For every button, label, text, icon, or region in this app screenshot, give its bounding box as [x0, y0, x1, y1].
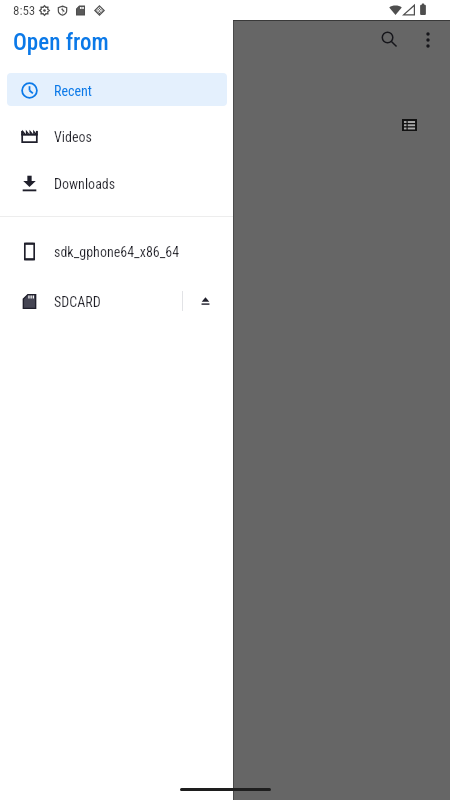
staticText: Open from: [13, 29, 109, 56]
button[interactable]: Videos: [0, 119, 233, 153]
button[interactable]: More options: [408, 20, 448, 60]
staticText: 8:53: [13, 3, 36, 18]
button[interactable]: Eject: [183, 284, 233, 318]
button[interactable]: Search: [369, 19, 409, 59]
staticText: SDCARD: [54, 294, 101, 310]
staticText: Downloads: [54, 176, 116, 192]
button[interactable]: sdk_gphone64_x86_64: [0, 234, 233, 268]
staticText: sdk_gphone64_x86_64: [54, 244, 180, 260]
staticText: Recent: [54, 83, 92, 99]
button[interactable]: [7, 73, 227, 106]
button[interactable]: SDCARD: [0, 284, 233, 318]
button[interactable]: Recent: [0, 73, 233, 107]
button[interactable]: Downloads: [0, 166, 233, 200]
staticText: Videos: [54, 129, 92, 145]
button[interactable]: List view: [389, 105, 429, 145]
